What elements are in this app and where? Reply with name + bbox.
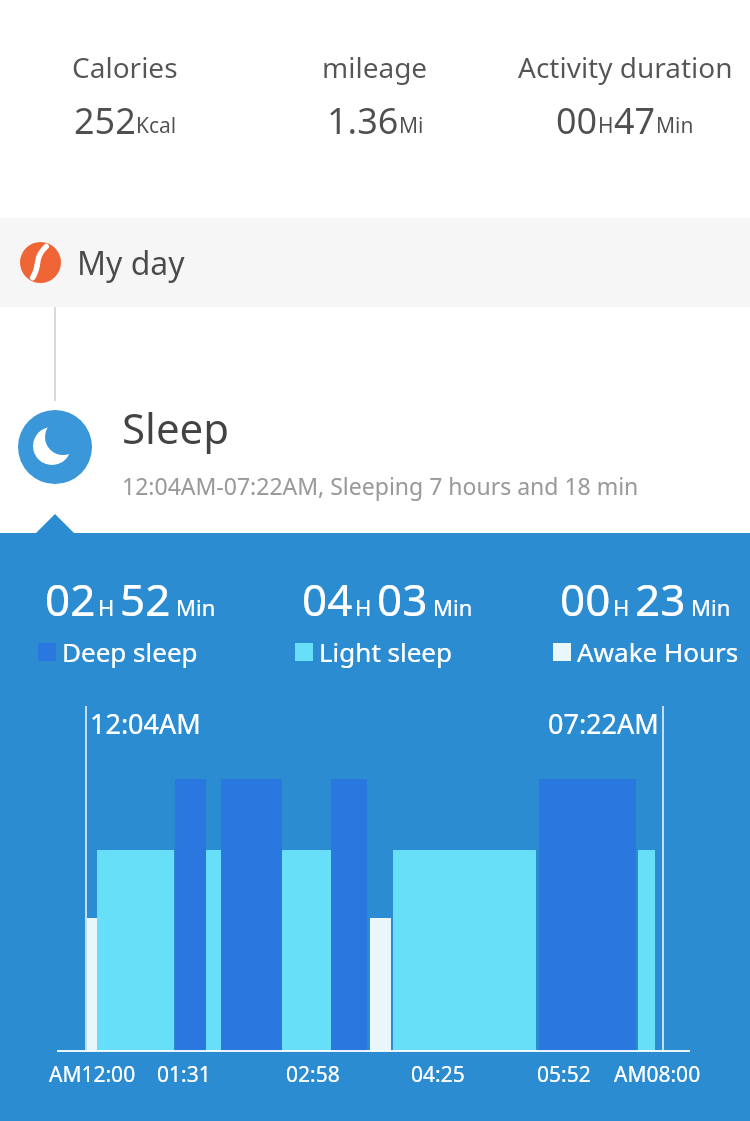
staticText: 04: [302, 569, 353, 629]
staticText: H: [98, 592, 115, 622]
staticText: mileage: [322, 48, 428, 86]
staticText: 04:25: [411, 1060, 465, 1089]
staticText: Light sleep: [319, 634, 453, 669]
staticText: Mi: [399, 111, 424, 140]
staticText: 03: [377, 569, 428, 629]
button[interactable]: mileage: [250, 48, 500, 145]
staticText: 1.36: [327, 96, 399, 145]
staticText: 47: [614, 96, 656, 145]
staticText: Min: [656, 111, 694, 140]
button[interactable]: My day: [0, 218, 750, 307]
staticText: 252: [74, 96, 136, 145]
staticText: 02:58: [286, 1060, 340, 1089]
staticText: H: [598, 111, 614, 140]
staticText: Min: [691, 592, 731, 622]
staticText: 00: [556, 96, 598, 145]
staticText: 01:31: [157, 1060, 211, 1089]
staticText: 52: [120, 569, 171, 629]
staticText: 12:04AM-07:22AM, Sleeping 7 hours and 18…: [122, 470, 639, 501]
staticText: Activity duration: [518, 48, 733, 86]
staticText: H: [355, 592, 372, 622]
staticText: AM08:00: [614, 1060, 701, 1089]
staticText: H: [613, 592, 630, 622]
staticText: 02: [45, 569, 96, 629]
button[interactable]: Sleep: [122, 399, 639, 501]
staticText: 05:52: [537, 1060, 591, 1089]
staticText: 12:04AM: [90, 705, 201, 742]
staticText: Awake Hours: [577, 634, 739, 669]
staticText: My day: [77, 241, 185, 285]
staticText: AM12:00: [49, 1060, 136, 1089]
staticText: 07:22AM: [548, 705, 659, 742]
staticText: 23: [635, 569, 686, 629]
staticText: Sleep: [122, 399, 230, 456]
staticText: Min: [176, 592, 216, 622]
button[interactable]: Calories: [0, 48, 250, 145]
staticText: Min: [433, 592, 473, 622]
staticText: Calories: [72, 48, 178, 86]
staticText: Kcal: [136, 111, 177, 140]
staticText: 00: [560, 569, 611, 629]
button[interactable]: Activity duration: [500, 48, 750, 145]
staticText: Deep sleep: [62, 634, 198, 669]
